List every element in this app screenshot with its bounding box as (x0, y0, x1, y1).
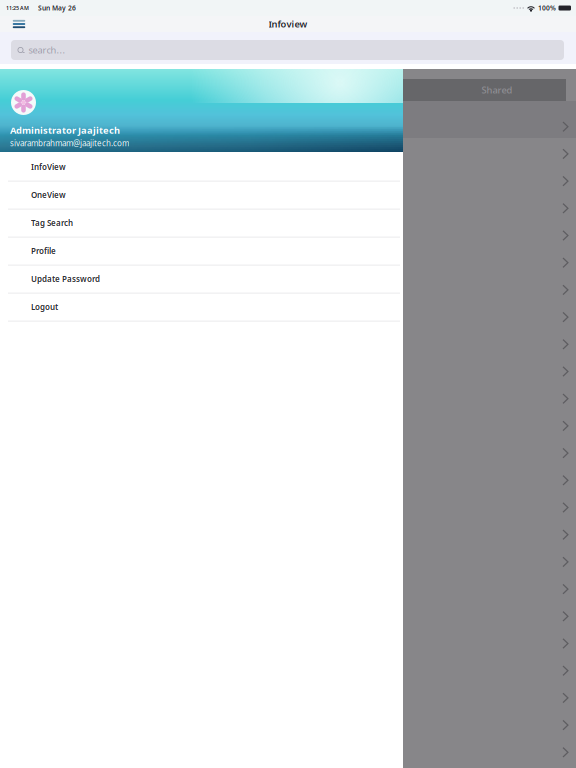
staticText: search... (28, 44, 65, 56)
staticText: Sun May 26 (38, 4, 76, 12)
button[interactable]: Profile (0, 237, 403, 265)
staticText: sivarambrahmam@jaajitech.com (10, 138, 129, 148)
button[interactable]: OneView (0, 181, 403, 209)
button[interactable]: Logout (0, 293, 403, 321)
button[interactable]: InfoView (0, 153, 403, 181)
staticText: Update Password (31, 274, 100, 284)
staticText: Infoview (268, 18, 307, 30)
staticText: Tag Search (31, 218, 73, 228)
staticText: Logout (31, 302, 58, 312)
staticText: InfoView (31, 162, 66, 172)
button[interactable]: Menu (6, 16, 32, 32)
staticText: Shared (481, 84, 512, 96)
staticText: Administrator Jaajitech (10, 124, 120, 136)
button[interactable]: Search (11, 40, 564, 60)
staticText: Profile (31, 246, 56, 256)
staticText: 11:25 AM (6, 4, 29, 12)
staticText: OneView (31, 190, 66, 200)
button[interactable]: Update Password (0, 265, 403, 293)
button[interactable]: Tag Search (0, 209, 403, 237)
staticText: 100% (538, 4, 556, 12)
